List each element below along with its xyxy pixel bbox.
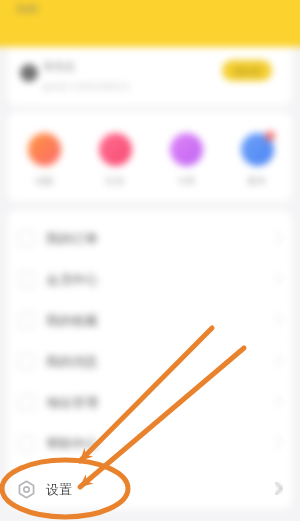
staticText: 9:41 <box>17 1 39 16</box>
staticText: 我的消息 <box>46 353 98 369</box>
button[interactable]: 会员中心 <box>14 258 283 299</box>
staticText: 我的收藏 <box>46 312 98 328</box>
staticText: 账单 <box>248 175 266 186</box>
button[interactable]: 账单 <box>221 130 292 186</box>
staticText: 卡券 <box>177 175 195 186</box>
button[interactable]: 余额 <box>8 130 79 186</box>
button[interactable]: 我的收藏 <box>14 299 283 340</box>
button[interactable]: 我的消息 <box>14 340 283 381</box>
other: 设置 <box>14 477 38 501</box>
button[interactable]: 红包 <box>79 130 150 186</box>
button[interactable]: 张先生 <box>8 47 292 106</box>
staticText: 去认证 <box>234 65 261 76</box>
button[interactable]: 地址管理 <box>14 381 283 422</box>
staticText: 会员中心 <box>46 271 98 287</box>
staticText: 红包 <box>106 175 124 186</box>
button[interactable]: 帮助中心 <box>14 422 283 463</box>
staticText: 地址管理 <box>46 394 98 410</box>
staticText: 张先生 <box>43 59 76 73</box>
staticText: 帮助中心 <box>46 435 98 451</box>
button[interactable]: 设置 <box>8 468 292 509</box>
staticText: 余额 <box>35 175 53 186</box>
button[interactable]: 去认证 <box>222 60 272 81</box>
staticText: 设置 <box>46 481 72 497</box>
staticText: 我的订单 <box>46 230 98 246</box>
button[interactable]: 卡券 <box>150 130 221 186</box>
button[interactable]: 我的订单 <box>14 217 283 258</box>
